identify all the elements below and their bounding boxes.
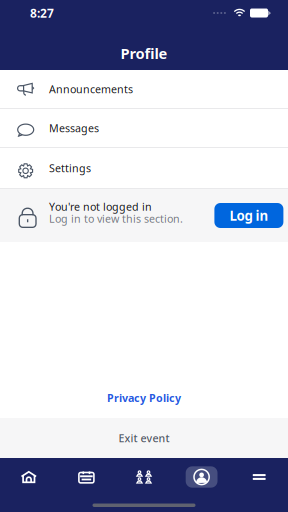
- button[interactable]: More: [230, 464, 288, 490]
- button[interactable]: Settings: [0, 148, 288, 189]
- staticText: Log in: [229, 207, 268, 224]
- staticText: Privacy Policy: [107, 391, 181, 405]
- staticText: Settings: [49, 161, 91, 175]
- staticText: Announcements: [49, 82, 133, 96]
- staticText: You're not logged in: [49, 199, 152, 214]
- staticText: 8:27: [30, 5, 54, 21]
- staticText: Log in to view this section.: [49, 211, 183, 226]
- button[interactable]: Profile: [173, 464, 230, 490]
- button[interactable]: Log in: [214, 203, 283, 228]
- button[interactable]: Attendees: [115, 464, 173, 490]
- button[interactable]: Schedule: [58, 464, 115, 490]
- button[interactable]: Privacy Policy: [0, 382, 288, 414]
- button[interactable]: Home: [0, 464, 58, 490]
- button[interactable]: Messages: [0, 109, 288, 148]
- staticText: Exit event: [118, 431, 169, 445]
- button[interactable]: Announcements: [0, 70, 288, 109]
- staticText: Messages: [49, 121, 99, 135]
- button[interactable]: Exit event: [0, 418, 288, 458]
- staticText: Profile: [120, 43, 167, 63]
